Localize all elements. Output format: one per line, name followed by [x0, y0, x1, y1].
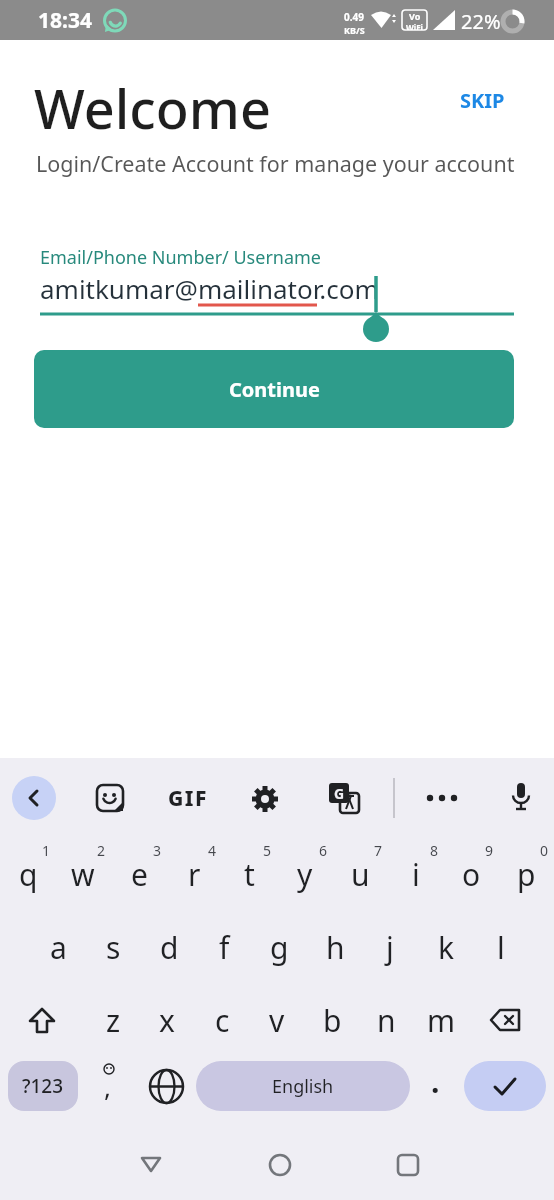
button[interactable]: u [334, 840, 386, 908]
button[interactable]: . [431, 1061, 440, 1102]
staticText: 0.49 [344, 10, 364, 24]
button[interactable]: e [113, 840, 165, 908]
staticText: b [323, 1000, 342, 1041]
button[interactable] [388, 1145, 428, 1185]
staticText: 8 [430, 841, 439, 860]
staticText: j [386, 927, 394, 968]
button[interactable]: m [415, 986, 467, 1054]
button[interactable]: ?123 [8, 1061, 78, 1111]
staticText: a [50, 927, 67, 968]
staticText: y [297, 854, 313, 895]
staticText: English [272, 1074, 334, 1099]
button[interactable] [248, 782, 282, 816]
staticText: w [71, 854, 95, 895]
button[interactable]: o [445, 840, 497, 908]
button[interactable]: v [251, 986, 303, 1054]
button[interactable]: p [500, 840, 552, 908]
button[interactable]: z [87, 986, 139, 1054]
button[interactable]: q [2, 840, 54, 908]
staticText: l [497, 927, 505, 968]
staticText: i [412, 854, 420, 895]
button[interactable]: English [196, 1061, 410, 1111]
button[interactable] [504, 780, 538, 814]
staticText: e [131, 854, 148, 895]
button[interactable]: x [141, 986, 193, 1054]
staticText: n [377, 1000, 396, 1041]
staticText: Email/Phone Number/ Username [40, 245, 322, 270]
staticText: x [159, 1000, 175, 1041]
button[interactable]: r [168, 840, 220, 908]
button[interactable]: s [87, 913, 139, 981]
button[interactable]: w [57, 840, 109, 908]
button[interactable]: d [143, 913, 195, 981]
button[interactable]: SKIP [460, 87, 505, 114]
staticText: r [188, 854, 201, 895]
button[interactable] [146, 1066, 186, 1106]
button[interactable]: j [364, 913, 416, 981]
staticText: 1 [42, 841, 51, 860]
staticText: 7 [374, 841, 383, 860]
button[interactable]: GIF [168, 784, 208, 813]
button[interactable] [20, 999, 64, 1043]
button[interactable]: f [198, 913, 250, 981]
button[interactable] [260, 1145, 300, 1185]
button[interactable] [424, 788, 460, 808]
button[interactable]: Continue [34, 350, 514, 428]
staticText: WiFi [406, 22, 423, 30]
staticText: f [219, 927, 230, 968]
staticText: 9 [485, 841, 494, 860]
button[interactable]: amitkumar@mailinator.com [36, 271, 518, 331]
staticText: k [438, 927, 455, 968]
button[interactable] [131, 1145, 171, 1185]
staticText: g [270, 927, 289, 968]
button[interactable]: t [223, 840, 275, 908]
button[interactable]: G [328, 782, 362, 816]
staticText: o [462, 854, 481, 895]
staticText: Login/Create Account for manage your acc… [36, 149, 515, 178]
staticText: m [427, 1000, 456, 1041]
button[interactable] [464, 1061, 546, 1111]
staticText: Continue [229, 376, 320, 403]
staticText: G [334, 784, 345, 803]
button[interactable] [483, 999, 527, 1043]
staticText: d [160, 927, 179, 968]
button[interactable]: n [360, 986, 412, 1054]
staticText: Vo [409, 10, 421, 22]
staticText: 6 [319, 841, 328, 860]
staticText: 0 [540, 841, 549, 860]
staticText: 3 [153, 841, 162, 860]
staticText: s [106, 927, 121, 968]
staticText: 18:34 [38, 6, 92, 35]
staticText: z [106, 1000, 121, 1041]
staticText: 2 [97, 841, 106, 860]
button[interactable]: b [306, 986, 358, 1054]
staticText: 4 [208, 841, 217, 860]
button[interactable]: y [279, 840, 331, 908]
staticText: q [19, 854, 38, 895]
button[interactable]: h [309, 913, 361, 981]
button[interactable]: i [390, 840, 442, 908]
staticText: amitkumar@mailinator.com [40, 271, 379, 306]
button[interactable] [12, 776, 56, 820]
staticText: p [517, 854, 536, 895]
staticText: KB/S [344, 24, 365, 36]
button[interactable]: , [104, 1069, 111, 1104]
button[interactable] [94, 782, 128, 816]
button[interactable]: c [196, 986, 248, 1054]
staticText: u [351, 854, 370, 895]
button[interactable]: l [475, 913, 527, 981]
staticText: 5 [263, 841, 272, 860]
button[interactable]: k [420, 913, 472, 981]
button[interactable]: a [32, 913, 84, 981]
staticText: c [215, 1000, 230, 1041]
staticText: Welcome [34, 71, 271, 145]
staticText: 22% [461, 8, 501, 35]
staticText: h [326, 927, 345, 968]
staticText: v [269, 1000, 285, 1041]
staticText: ?123 [22, 1073, 64, 1099]
button[interactable]: g [253, 913, 305, 981]
staticText: t [244, 854, 255, 895]
